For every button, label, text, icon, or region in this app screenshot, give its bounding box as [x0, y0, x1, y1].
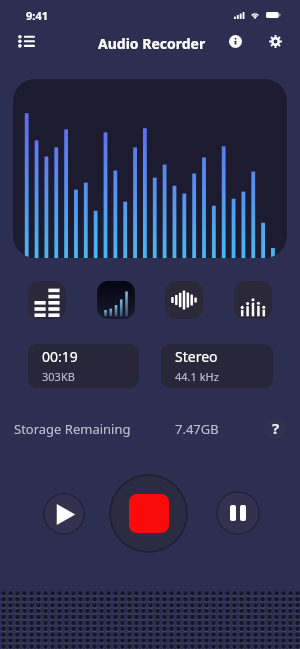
staticText: Stereo [175, 347, 218, 366]
staticText: ? [272, 418, 280, 438]
staticText: 44.1 kHz [175, 369, 219, 384]
button[interactable]: Help [265, 418, 286, 439]
button[interactable]: Pause [216, 491, 260, 535]
button[interactable]: Recordings list [11, 27, 41, 56]
button[interactable]: 00:19 [28, 344, 139, 388]
button[interactable]: Spectrum mode [234, 281, 272, 319]
button[interactable]: Level mode [97, 281, 135, 319]
button[interactable]: Info [221, 27, 249, 55]
staticText: 9:41 [26, 8, 48, 23]
staticText: Storage Remaining [14, 420, 131, 438]
staticText: 303KB [42, 369, 75, 384]
button[interactable]: Settings [261, 27, 289, 55]
button[interactable]: Record [114, 479, 183, 548]
staticText: 7.47GB [175, 420, 219, 438]
staticText: Audio Recorder [98, 34, 206, 53]
button[interactable]: Play [43, 493, 85, 535]
button[interactable]: Waveform mode [165, 281, 203, 319]
button[interactable]: Stereo [161, 344, 273, 388]
staticText: 00:19 [42, 347, 78, 366]
button[interactable]: Equalizer mode [28, 281, 66, 319]
